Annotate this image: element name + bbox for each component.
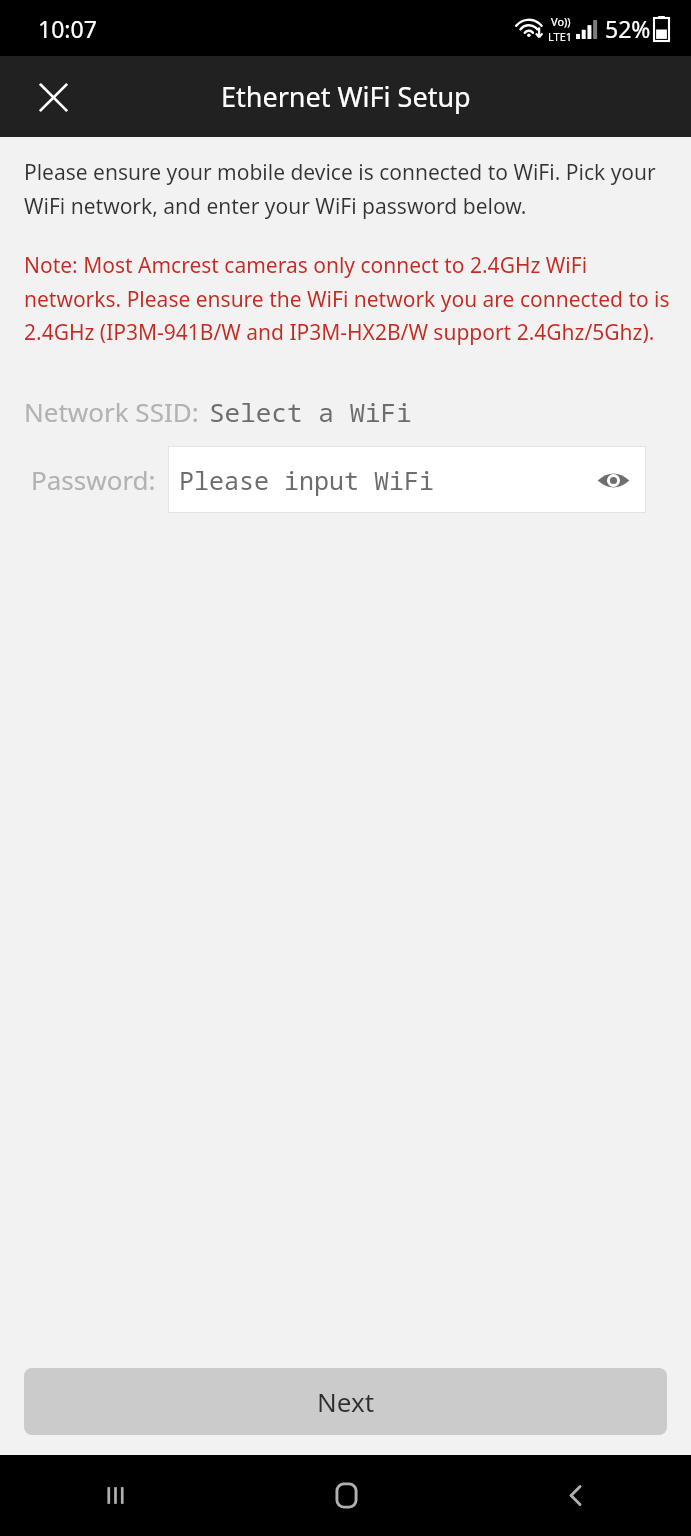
staticText: Please ensure your mobile device is conn… [24,158,669,220]
staticText: Password: [31,462,156,497]
button[interactable]: Close [20,64,86,130]
staticText: 52% [605,13,651,44]
staticText: Select a WiFi [209,394,412,429]
button[interactable]: Home [231,1455,461,1536]
button[interactable]: Next [24,1368,667,1435]
staticText: Note: Most Amcrest cameras only connect … [24,251,671,346]
button[interactable]: Please input WiFi [168,446,646,513]
button[interactable]: Recent apps [0,1455,231,1536]
button[interactable]: Network SSID: [0,388,691,434]
staticText: LTE1 [548,29,573,44]
staticText: Vo)) [551,14,571,29]
staticText: 10:07 [38,13,97,44]
staticText: Network SSID: [24,394,199,429]
button[interactable]: Back [461,1455,691,1536]
staticText: Next [317,1384,375,1419]
staticText: Ethernet WiFi Setup [221,78,471,115]
button[interactable]: Show password [588,455,638,505]
staticText: Please input WiFi [179,463,435,497]
